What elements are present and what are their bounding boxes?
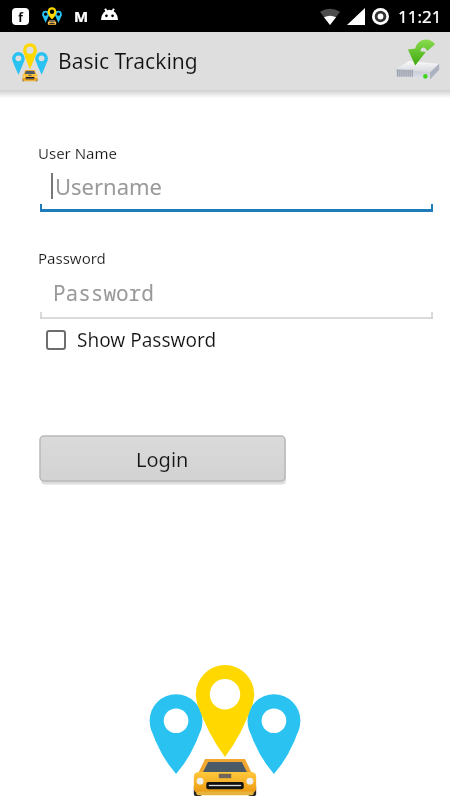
staticText: Basic Tracking — [58, 47, 198, 76]
button[interactable]: Show Password — [46, 327, 217, 353]
staticText: Login — [136, 446, 189, 473]
staticText: Show Password — [77, 327, 217, 353]
staticText: User Name — [38, 143, 118, 163]
button[interactable]: Username — [40, 171, 433, 212]
button[interactable] — [392, 35, 444, 87]
staticText: Password — [53, 279, 154, 308]
staticText: f — [18, 8, 24, 25]
staticText: M — [74, 6, 89, 26]
staticText: Password — [38, 248, 106, 268]
staticText: 11:21 — [398, 5, 442, 28]
button[interactable]: Login — [40, 436, 285, 482]
button[interactable]: Password — [40, 279, 433, 319]
staticText: Username — [55, 171, 163, 201]
